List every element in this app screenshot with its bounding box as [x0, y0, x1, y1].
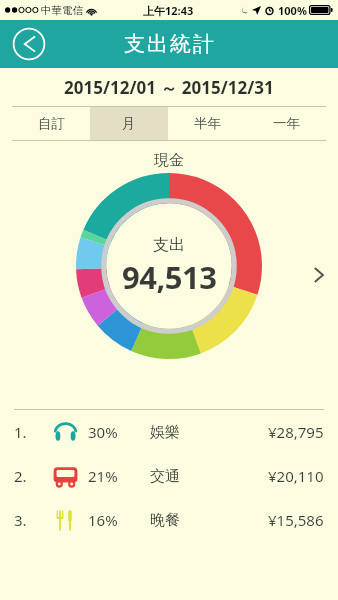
staticText: 100% — [278, 3, 307, 18]
button[interactable]: 1. — [14, 410, 324, 454]
button[interactable]: 月 — [90, 107, 168, 140]
button[interactable]: 一年 — [247, 107, 326, 140]
staticText: 94,513 — [122, 256, 217, 298]
staticText: 月 — [122, 115, 136, 132]
button[interactable]: Back — [12, 27, 46, 61]
staticText: 上午12:43 — [143, 3, 194, 18]
staticText: 30% — [88, 422, 118, 442]
staticText: 支出 — [153, 235, 185, 255]
staticText: ¥20,110 — [268, 466, 324, 486]
button[interactable]: 2. — [14, 454, 324, 498]
staticText: 2015/12/01 ～ 2015/12/31 — [64, 76, 274, 99]
staticText: 交通 — [150, 467, 180, 486]
staticText: 16% — [88, 510, 118, 530]
staticText: 自訂 — [38, 115, 65, 132]
staticText: 娛樂 — [150, 423, 180, 442]
staticText: 中華電信 — [41, 4, 83, 17]
staticText: 2. — [14, 466, 27, 486]
staticText: 3. — [14, 510, 27, 530]
staticText: 1. — [14, 422, 27, 442]
button[interactable]: 自訂 — [12, 107, 90, 140]
staticText: ¥28,795 — [268, 422, 324, 442]
staticText: 21% — [88, 466, 118, 486]
staticText: 一年 — [273, 115, 300, 132]
staticText: 晚餐 — [150, 511, 180, 530]
button[interactable]: 半年 — [168, 107, 247, 140]
button[interactable]: 3. — [14, 498, 324, 542]
button[interactable]: Next — [306, 262, 332, 288]
staticText: 半年 — [194, 115, 221, 132]
staticText: 現金 — [154, 151, 184, 170]
staticText: ¥15,586 — [268, 510, 324, 530]
staticText: 支出統計 — [123, 31, 215, 57]
